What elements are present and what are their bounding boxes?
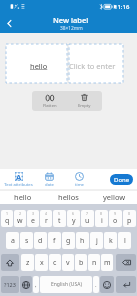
button[interactable]: 0 bbox=[123, 210, 136, 227]
button[interactable]: j bbox=[90, 232, 103, 249]
staticText: Done bbox=[114, 176, 130, 184]
staticText: hello bbox=[30, 61, 48, 71]
button[interactable]: Done bbox=[110, 174, 133, 185]
staticText: e bbox=[31, 216, 35, 226]
button[interactable]: 2 bbox=[14, 210, 26, 227]
staticText: c bbox=[53, 258, 57, 268]
staticText: 1 bbox=[6, 211, 9, 216]
button[interactable]: hellos bbox=[45, 190, 91, 204]
staticText: v bbox=[66, 258, 70, 268]
staticText: 6 bbox=[72, 211, 75, 216]
button[interactable]: z bbox=[21, 254, 34, 271]
button[interactable]: 8 bbox=[95, 210, 108, 227]
staticText: j bbox=[96, 236, 98, 246]
staticText: Flatten bbox=[43, 103, 57, 109]
button[interactable]: d bbox=[34, 232, 47, 249]
staticText: hellos bbox=[58, 192, 79, 202]
button[interactable]: x bbox=[35, 254, 48, 271]
button[interactable]: h bbox=[76, 232, 89, 249]
staticText: h bbox=[80, 236, 85, 246]
staticText: a bbox=[11, 236, 15, 246]
button[interactable]: g bbox=[62, 232, 75, 249]
staticText: ?123 bbox=[4, 281, 16, 288]
button[interactable]: hello bbox=[0, 190, 45, 204]
button[interactable]: 4 bbox=[40, 210, 52, 227]
button[interactable]: time bbox=[64, 169, 95, 190]
staticText: o bbox=[113, 216, 118, 226]
button[interactable]: Back bbox=[0, 13, 18, 33]
button[interactable]: b bbox=[75, 254, 87, 271]
staticText: b bbox=[79, 258, 84, 268]
staticText: s bbox=[25, 236, 29, 246]
button[interactable]: c bbox=[49, 254, 61, 271]
staticText: r bbox=[45, 216, 48, 226]
button[interactable]: a bbox=[6, 232, 19, 249]
staticText: x bbox=[40, 258, 44, 268]
button[interactable]: date bbox=[34, 169, 65, 190]
button[interactable]: , bbox=[33, 276, 39, 293]
button[interactable]: A bbox=[3, 169, 34, 190]
button[interactable]: v bbox=[62, 254, 74, 271]
staticText: w bbox=[17, 216, 23, 226]
staticText: 4 bbox=[45, 211, 48, 216]
staticText: f bbox=[53, 236, 56, 246]
staticText: 11:16 bbox=[114, 3, 130, 11]
button[interactable]: ?123 bbox=[1, 276, 19, 293]
button[interactable]: s bbox=[20, 232, 33, 249]
button[interactable]: n bbox=[88, 254, 100, 271]
staticText: 9 bbox=[114, 211, 117, 216]
staticText: 8 bbox=[100, 211, 103, 216]
button[interactable]: Backspace bbox=[116, 254, 136, 271]
staticText: hello bbox=[14, 192, 32, 202]
button[interactable]: 6 bbox=[67, 210, 80, 227]
staticText: , bbox=[35, 281, 37, 289]
staticText: p bbox=[127, 216, 132, 226]
button[interactable]: 7 bbox=[81, 210, 94, 227]
staticText: m bbox=[104, 258, 111, 268]
staticText: A bbox=[16, 172, 22, 181]
button[interactable]: yellow bbox=[91, 190, 137, 204]
staticText: z bbox=[26, 258, 30, 268]
button[interactable]: hello bbox=[6, 44, 67, 83]
staticText: q bbox=[5, 216, 10, 226]
button[interactable]: English (USA) bbox=[40, 276, 92, 293]
button[interactable]: Enter bbox=[116, 276, 136, 293]
button[interactable]: Empty bbox=[67, 91, 102, 111]
staticText: English (USA) bbox=[51, 281, 82, 288]
staticText: Text attributes bbox=[4, 182, 33, 188]
staticText: 0 bbox=[128, 211, 131, 216]
staticText: n bbox=[92, 258, 97, 268]
staticText: 7 bbox=[86, 211, 89, 216]
staticText: 38×12mm bbox=[60, 25, 83, 32]
staticText: g bbox=[66, 236, 71, 246]
button[interactable]: Flatten bbox=[32, 91, 67, 111]
button[interactable]: f bbox=[48, 232, 61, 249]
button[interactable]: . bbox=[93, 276, 99, 293]
button[interactable]: Emoji bbox=[100, 276, 114, 293]
button[interactable]: k bbox=[104, 232, 117, 249]
staticText: u bbox=[85, 216, 90, 226]
button[interactable]: m bbox=[101, 254, 113, 271]
staticText: t bbox=[58, 216, 61, 226]
button[interactable]: 5 bbox=[53, 210, 66, 227]
staticText: Click to enter bbox=[69, 61, 116, 71]
button[interactable]: l bbox=[118, 232, 131, 249]
staticText: Empty bbox=[78, 103, 91, 109]
button[interactable]: 9 bbox=[109, 210, 122, 227]
staticText: k bbox=[109, 236, 113, 246]
staticText: 3 bbox=[32, 211, 35, 216]
staticText: l bbox=[124, 236, 126, 246]
staticText: 2 bbox=[19, 211, 22, 216]
button[interactable]: Click to enter bbox=[69, 44, 123, 83]
staticText: i bbox=[101, 216, 103, 226]
button[interactable]: Shift bbox=[1, 254, 19, 271]
staticText: y bbox=[72, 216, 76, 226]
staticText: d bbox=[38, 236, 43, 246]
staticText: date bbox=[45, 182, 54, 188]
staticText: . bbox=[95, 281, 97, 289]
button[interactable]: Language bbox=[20, 276, 32, 293]
button[interactable]: 1 bbox=[1, 210, 13, 227]
button[interactable]: 3 bbox=[27, 210, 39, 227]
staticText: yellow bbox=[103, 192, 126, 202]
staticText: 5 bbox=[58, 211, 61, 216]
